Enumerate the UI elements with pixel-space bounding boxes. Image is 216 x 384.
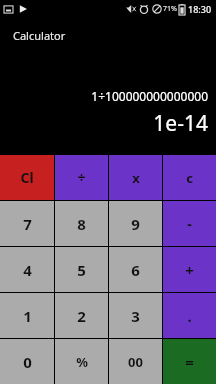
button[interactable]: % <box>55 339 108 384</box>
button[interactable]: 4 <box>0 247 54 292</box>
button[interactable]: 0 <box>0 339 54 384</box>
staticText: + <box>185 260 194 280</box>
button[interactable]: c <box>163 155 216 200</box>
staticText: 7 <box>23 214 32 234</box>
button[interactable]: 00 <box>109 339 162 384</box>
staticText: 18:30 <box>188 3 212 15</box>
staticText: 8 <box>77 214 86 234</box>
staticText: 1÷100000000000000 <box>0 88 208 104</box>
staticText: 71% <box>163 4 177 14</box>
button[interactable]: . <box>163 293 216 338</box>
button[interactable]: 9 <box>109 201 162 246</box>
staticText: ÷ <box>77 168 86 187</box>
button[interactable]: x <box>109 155 162 200</box>
staticText: . <box>187 306 192 326</box>
staticText: 0 <box>23 352 32 372</box>
button[interactable]: 2 <box>55 293 108 338</box>
staticText: = <box>185 352 194 372</box>
staticText: Cl <box>20 168 34 187</box>
button[interactable]: Cl <box>0 155 54 200</box>
button[interactable]: 8 <box>55 201 108 246</box>
staticText: - <box>187 214 192 233</box>
button[interactable]: 5 <box>55 247 108 292</box>
staticText: % <box>76 353 88 371</box>
staticText: 1e-14 <box>0 109 208 138</box>
staticText: 2 <box>77 306 86 326</box>
staticText: 3 <box>131 306 140 326</box>
staticText: 00 <box>128 353 143 371</box>
staticText: 4 <box>23 260 32 280</box>
button[interactable]: + <box>163 247 216 292</box>
staticText: 5 <box>77 260 86 280</box>
button[interactable]: = <box>163 339 216 384</box>
button[interactable]: 1 <box>0 293 54 338</box>
button[interactable]: ÷ <box>55 155 108 200</box>
staticText: Calculator <box>13 28 66 43</box>
staticText: x <box>132 169 140 187</box>
staticText: 9 <box>131 214 140 234</box>
staticText: 6 <box>131 260 140 280</box>
staticText: c <box>186 169 193 187</box>
staticText: 1 <box>23 306 32 326</box>
button[interactable]: 3 <box>109 293 162 338</box>
button[interactable]: 6 <box>109 247 162 292</box>
button[interactable]: 7 <box>0 201 54 246</box>
button[interactable]: - <box>163 201 216 246</box>
